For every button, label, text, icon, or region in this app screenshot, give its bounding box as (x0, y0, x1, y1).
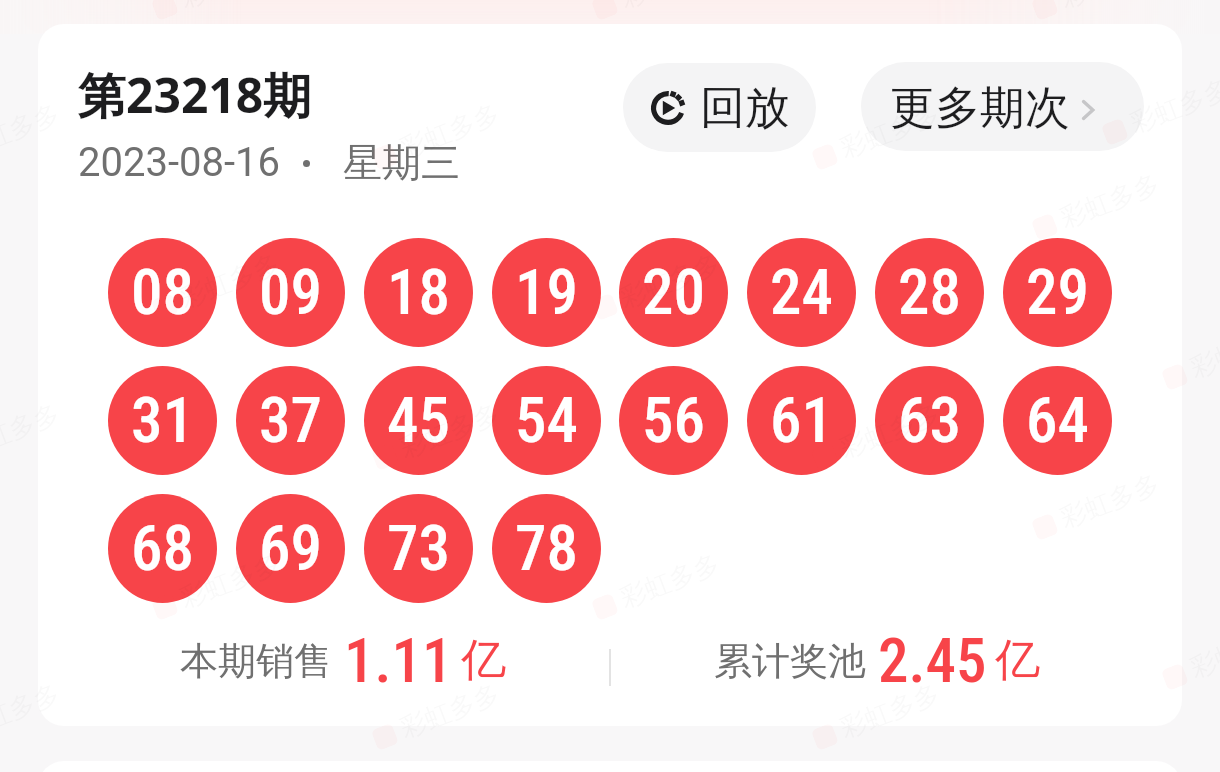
button[interactable]: 08 (108, 238, 217, 347)
staticText: 彩虹多多 (176, 247, 284, 315)
button[interactable]: 37 (236, 366, 345, 475)
staticText: 54 (515, 384, 578, 458)
staticText: 亿 (461, 632, 506, 689)
staticText: 61 (770, 384, 833, 458)
staticText: 20 (642, 256, 705, 330)
button[interactable]: 28 (875, 238, 984, 347)
button[interactable]: 64 (1003, 366, 1112, 475)
staticText: 2.45 (878, 625, 987, 695)
staticText: 彩虹多多 (176, 547, 284, 615)
staticText: 彩虹多多 (0, 677, 64, 745)
staticText: 彩虹多多 (836, 97, 944, 165)
staticText: 累计奖池 (714, 637, 866, 685)
staticText: 68 (131, 512, 194, 586)
staticText: 63 (898, 384, 961, 458)
staticText: 彩虹多多 (616, 247, 724, 315)
button[interactable]: 31 (108, 366, 217, 475)
button[interactable]: 63 (875, 366, 984, 475)
button[interactable]: 56 (619, 366, 728, 475)
button[interactable]: 20 (619, 238, 728, 347)
staticText: 彩虹多多 (836, 397, 944, 465)
staticText: 彩虹多多 (396, 397, 504, 465)
button[interactable]: 19 (492, 238, 601, 347)
staticText: 08 (131, 256, 194, 330)
staticText: 本期销售 (180, 637, 332, 685)
button[interactable]: 61 (747, 366, 856, 475)
button[interactable]: 78 (492, 494, 601, 603)
button[interactable]: 68 (108, 494, 217, 603)
staticText: 19 (515, 256, 578, 330)
button[interactable]: 更多期次 (861, 62, 1144, 151)
button[interactable]: 29 (1003, 238, 1112, 347)
staticText: 彩虹多多 (1126, 72, 1220, 140)
staticText: 彩虹多多 (0, 97, 64, 165)
staticText: 37 (259, 384, 322, 458)
staticText: 73 (387, 512, 450, 586)
staticText: 29 (1026, 256, 1089, 330)
staticText: 64 (1026, 384, 1089, 458)
staticText: 第23218期 (78, 62, 312, 128)
staticText: 彩虹多多 (396, 97, 504, 165)
button[interactable]: 54 (492, 366, 601, 475)
button[interactable]: 09 (236, 238, 345, 347)
staticText: 彩虹多多 (0, 397, 64, 465)
staticText: 星期三 (343, 138, 460, 187)
button[interactable]: 45 (364, 366, 473, 475)
staticText: 18 (387, 256, 450, 330)
button[interactable]: 24 (747, 238, 856, 347)
staticText: 彩虹多多 (1056, 467, 1164, 535)
staticText: 45 (387, 384, 450, 458)
button[interactable]: 18 (364, 238, 473, 347)
button[interactable]: 回放 Replay (623, 63, 816, 152)
staticText: 24 (770, 256, 833, 330)
staticText: 09 (259, 256, 322, 330)
staticText: 56 (642, 384, 705, 458)
button[interactable]: 69 (236, 494, 345, 603)
staticText: 31 (131, 384, 194, 458)
staticText: 28 (898, 256, 961, 330)
other: Replay (651, 91, 685, 125)
staticText: 1.11 (344, 625, 453, 695)
staticText: 亿 (995, 632, 1040, 689)
staticText: 69 (259, 512, 322, 586)
button[interactable]: 73 (364, 494, 473, 603)
staticText: 彩虹多多 (396, 677, 504, 745)
staticText: 78 (515, 512, 578, 586)
staticText: 更多期次 (890, 80, 1070, 137)
staticText: 回放 (700, 80, 790, 137)
staticText: 彩虹多多 (836, 677, 944, 745)
staticText: 2023-08-16 (78, 139, 280, 186)
